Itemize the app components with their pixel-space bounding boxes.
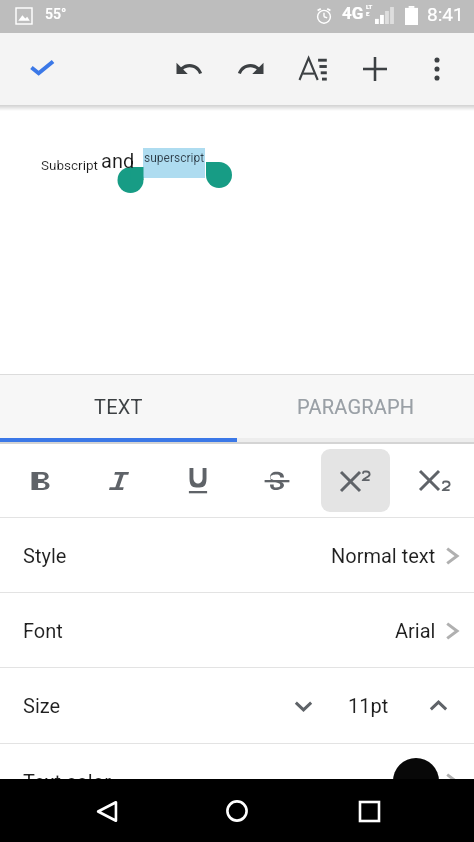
button[interactable]: Text color <box>0 744 474 819</box>
button[interactable]: Add comment <box>393 758 439 804</box>
staticText: TEXT <box>94 395 143 418</box>
staticText: E <box>366 10 370 17</box>
staticText: Font <box>23 619 63 642</box>
staticText: Size <box>23 694 61 717</box>
button[interactable]: TEXT <box>0 375 237 438</box>
button[interactable]: Recent apps <box>343 785 395 837</box>
staticText: LT <box>366 3 373 10</box>
button[interactable]: Undo <box>158 38 220 100</box>
button[interactable]: Superscript <box>316 444 395 517</box>
staticText: Normal text <box>331 544 436 567</box>
button[interactable]: Redo <box>220 38 282 100</box>
button[interactable]: More options <box>406 38 468 100</box>
staticText: 11pt <box>348 694 389 717</box>
button[interactable]: Strikethrough <box>237 444 316 517</box>
button[interactable]: Done <box>14 39 70 95</box>
button[interactable]: Style <box>0 518 474 593</box>
button[interactable]: Back <box>80 785 132 837</box>
button[interactable]: Home <box>211 785 263 837</box>
staticText: Style <box>23 544 67 567</box>
staticText: 4G <box>342 3 364 23</box>
button[interactable]: Italic <box>79 444 158 517</box>
button[interactable]: Font <box>0 593 474 668</box>
staticText: 55° <box>45 6 67 22</box>
button[interactable]: Underline <box>158 444 237 517</box>
button[interactable]: Increase size <box>411 679 465 733</box>
staticText: Text color <box>23 770 111 793</box>
button[interactable]: PARAGRAPH <box>237 375 474 438</box>
staticText: PARAGRAPH <box>297 395 415 418</box>
staticText: superscript <box>144 151 205 165</box>
staticText: and <box>101 149 135 172</box>
staticText: 8:41 <box>427 3 464 25</box>
button[interactable]: Formatting <box>282 38 344 100</box>
button[interactable]: Decrease size <box>276 679 330 733</box>
button[interactable]: Subscript <box>395 444 474 517</box>
staticText: Subscript <box>41 157 98 173</box>
button[interactable]: Insert <box>344 38 406 100</box>
button[interactable]: Bold <box>0 444 79 517</box>
staticText: Arial <box>395 619 436 642</box>
